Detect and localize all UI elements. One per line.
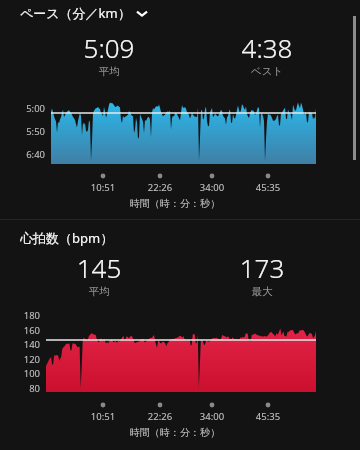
staticText: 160 bbox=[6, 324, 40, 337]
staticText: 145 bbox=[39, 250, 159, 285]
staticText: 心拍数（bpm） bbox=[20, 229, 114, 247]
staticText: 100 bbox=[6, 367, 40, 380]
staticText: 45:35 bbox=[248, 181, 288, 194]
staticText: 10:51 bbox=[83, 181, 123, 194]
staticText: 最大 bbox=[202, 285, 322, 298]
staticText: 173 bbox=[202, 250, 322, 285]
staticText: 平均 bbox=[39, 285, 159, 298]
staticText: 140 bbox=[6, 338, 40, 351]
staticText: ベスト bbox=[207, 65, 327, 78]
staticText: 22:26 bbox=[140, 181, 180, 194]
button[interactable]: 173 bbox=[202, 250, 322, 298]
staticText: 10:51 bbox=[83, 410, 123, 423]
staticText: 平均 bbox=[49, 65, 169, 78]
staticText: 120 bbox=[6, 353, 40, 366]
button[interactable]: ペース（分／km） bbox=[0, 1, 360, 25]
staticText: ペース（分／km） bbox=[20, 4, 131, 22]
staticText: 180 bbox=[6, 309, 40, 322]
other: Change metric bbox=[135, 6, 149, 20]
button[interactable]: 145 bbox=[39, 250, 159, 298]
staticText: 5:50 bbox=[11, 125, 45, 138]
staticText: 80 bbox=[6, 382, 40, 395]
staticText: 34:00 bbox=[192, 181, 232, 194]
staticText: 時間（時：分：秒） bbox=[0, 197, 355, 210]
button[interactable]: 4:38 bbox=[207, 30, 327, 78]
staticText: 4:38 bbox=[207, 30, 327, 65]
staticText: 5:09 bbox=[49, 30, 169, 65]
staticText: 34:00 bbox=[192, 410, 232, 423]
staticText: 6:40 bbox=[11, 148, 45, 161]
staticText: 45:35 bbox=[248, 410, 288, 423]
button[interactable]: 心拍数（bpm） bbox=[0, 226, 360, 250]
button[interactable]: 5:09 bbox=[49, 30, 169, 78]
staticText: 時間（時：分：秒） bbox=[0, 426, 355, 439]
staticText: 22:26 bbox=[140, 410, 180, 423]
staticText: 5:00 bbox=[11, 102, 45, 115]
